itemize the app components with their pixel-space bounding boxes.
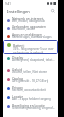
button[interactable]: Verbonden apparaten (3, 24, 58, 32)
staticText: 42% gebruikt - 18,27 GB vrij (12, 79, 49, 83)
staticText: Aan - 3 apps hebben toegang (12, 97, 51, 101)
staticText: 9:41 (5, 2, 11, 6)
staticText: Beveiliging en locatie (12, 103, 45, 107)
staticText: Achtergrond, slaapstand, tekstgrootte (12, 58, 56, 62)
button[interactable]: Apps en meldingen (3, 32, 58, 40)
button[interactable]: Opslag (3, 75, 58, 84)
staticText: 74% - Nog ongeveer 5 uur over op basis v… (13, 47, 56, 54)
button[interactable]: Locatie (3, 93, 58, 102)
button[interactable]: Search (49, 7, 57, 15)
staticText: Geluid (12, 67, 23, 71)
button[interactable]: Batterij (3, 40, 58, 54)
staticText: Locatie (12, 94, 24, 98)
staticText: Verbonden apparaten (12, 24, 46, 28)
staticText: Apps en meldingen (12, 32, 42, 36)
staticText: Privacy (12, 85, 23, 89)
button[interactable]: Netwerk en internet (3, 16, 58, 24)
staticText: Wifi, mobiel, datagebruik (12, 19, 45, 23)
staticText: Schermvergrendeling, vingerafdruk (12, 106, 56, 110)
staticText: Bluetooth, casten (12, 27, 36, 31)
staticText: Display (12, 55, 24, 59)
staticText: Netwerk en internet (12, 16, 44, 20)
staticText: Recente apps, standaard-apps (12, 35, 52, 39)
staticText: Batterij (13, 43, 25, 47)
button[interactable]: Geluid (3, 66, 58, 75)
button[interactable]: Display (3, 54, 58, 63)
staticText: Volume, trillen, Niet storen (12, 70, 48, 74)
staticText: Opslag (12, 76, 23, 80)
staticText: Instellingen (7, 9, 30, 14)
button[interactable]: Beveiliging en locatie (3, 102, 58, 111)
staticText: Rechten, accountactiviteit (12, 88, 46, 92)
button[interactable]: Privacy (3, 84, 58, 93)
